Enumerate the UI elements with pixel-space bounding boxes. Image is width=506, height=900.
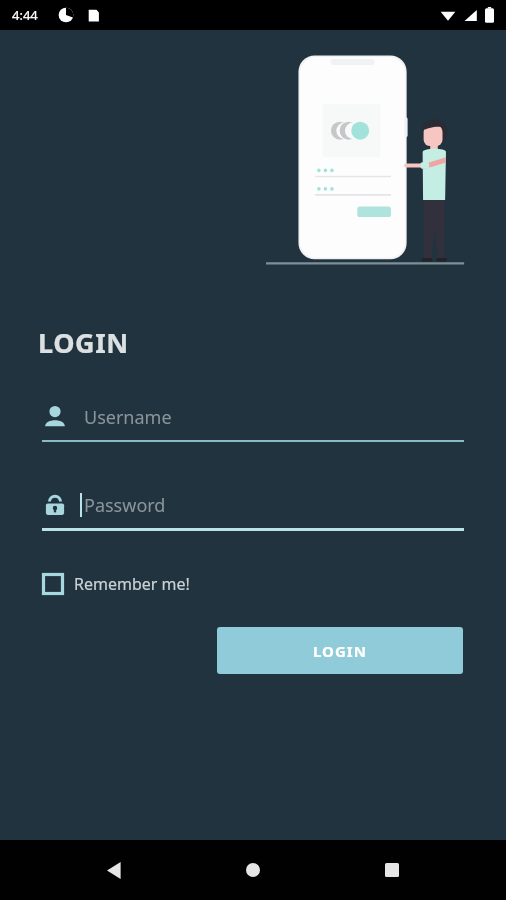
button[interactable]: Recent apps — [368, 846, 416, 894]
button[interactable]: LOGIN — [217, 627, 463, 674]
button[interactable]: Username — [42, 404, 464, 442]
staticText: Password — [84, 493, 166, 518]
staticText: 4:44 — [12, 6, 38, 24]
button[interactable]: Remember me! — [42, 569, 200, 599]
staticText: Remember me! — [74, 573, 190, 595]
staticText: LOGIN — [313, 641, 367, 661]
staticText: Username — [84, 405, 172, 430]
staticText: LOGIN — [38, 324, 129, 361]
button[interactable]: Password — [42, 492, 464, 531]
button[interactable]: Home — [229, 846, 277, 894]
button[interactable]: Back — [91, 846, 139, 894]
